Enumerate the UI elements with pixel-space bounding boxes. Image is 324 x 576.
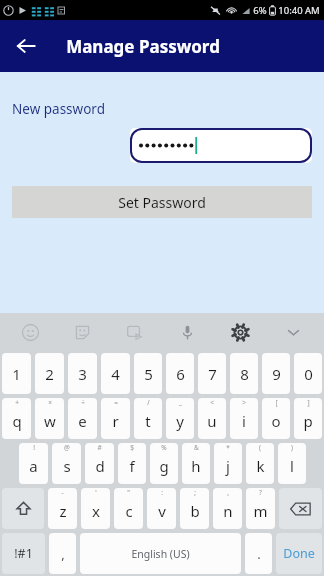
staticText: # [97,443,102,452]
button[interactable]: ; [180,488,209,529]
button[interactable]: ÷ [68,398,97,439]
button[interactable]: × [35,398,64,439]
staticText: ' [95,488,97,497]
button[interactable]: !#1 [2,533,45,574]
button[interactable]: > [230,398,258,439]
staticText: 9 [272,364,281,384]
button[interactable]: " [114,488,143,529]
button[interactable]: / [134,398,162,439]
button[interactable]: @ [52,443,81,484]
staticText: ? [259,488,262,497]
button[interactable]: Voice input [161,313,214,351]
staticText: < [210,398,214,407]
staticText: i [242,411,246,431]
button[interactable]: Set Password [12,186,312,218]
button[interactable]: 2 [35,353,64,394]
staticText: m [253,501,268,521]
button[interactable]: 6 [166,353,194,394]
staticText: 6% [253,4,267,17]
button[interactable]: 5 [134,353,162,394]
staticText: 7 [208,364,217,384]
button[interactable]: : [147,488,176,529]
staticText: " [127,488,130,497]
button[interactable]: 1 [2,353,31,394]
staticText: 2 [45,364,54,384]
button[interactable]: - [48,488,77,529]
staticText: ; [194,488,196,497]
button[interactable]: 8 [230,353,258,394]
staticText: , [61,545,65,563]
staticText: f [129,456,135,476]
staticText: x [92,501,100,521]
button[interactable]: GIF [108,313,161,351]
staticText: v [158,501,166,521]
staticText: . [257,545,261,563]
staticText: × [48,398,52,407]
staticText: New password [12,100,105,118]
button[interactable]: $ [118,443,146,484]
staticText: + [15,398,19,407]
staticText: o [271,411,281,431]
button[interactable]: Hide keyboard [267,313,320,351]
button[interactable]: ! [19,443,48,484]
button[interactable]: Backspace [279,488,322,529]
button[interactable]: , [49,533,76,574]
staticText: y [176,411,184,431]
staticText: Done [283,545,315,562]
button[interactable]: # [85,443,114,484]
button[interactable]: , [213,488,242,529]
staticText: !#1 [14,545,33,562]
staticText: j [226,456,230,476]
staticText: q [12,411,22,431]
button[interactable]: 7 [198,353,226,394]
staticText: English (US) [131,547,190,561]
staticText: ÷ [81,398,85,407]
button[interactable]: < [198,398,226,439]
button[interactable]: 9 [262,353,290,394]
button[interactable]: _ [166,398,194,439]
button[interactable]: New password field [130,128,312,163]
button[interactable]: . [245,533,272,574]
staticText: Set Password [118,193,206,212]
staticText: r [112,411,119,431]
staticText: 6 [176,364,185,384]
button[interactable]: ( [246,443,274,484]
button[interactable]: Back [8,28,44,64]
button[interactable]: ] [294,398,322,439]
button[interactable]: 3 [68,353,97,394]
button[interactable]: Stickers [56,313,108,351]
button[interactable]: Done [276,533,322,574]
staticText: b [190,501,200,521]
staticText: * [226,443,230,452]
staticText: l [290,456,294,476]
staticText: = [114,398,118,407]
staticText: / [147,398,150,407]
button[interactable]: % [150,443,178,484]
staticText: 4 [111,364,120,384]
button[interactable]: Emoji [4,313,56,351]
staticText: % [161,443,167,452]
button[interactable]: * [214,443,242,484]
button[interactable]: 0 [294,353,322,394]
button[interactable]: Settings [214,313,267,351]
button[interactable]: ) [278,443,306,484]
button[interactable]: 4 [101,353,130,394]
button[interactable]: & [182,443,210,484]
staticText: ) [291,443,293,452]
staticText: 0 [304,364,313,384]
staticText: > [242,398,246,407]
button[interactable]: + [2,398,31,439]
button[interactable]: [ [262,398,290,439]
staticText: g [159,456,169,476]
button[interactable]: English (US) [80,533,241,574]
staticText: z [59,501,67,521]
button[interactable]: ? [246,488,275,529]
staticText: 8 [240,364,249,384]
button[interactable]: = [101,398,130,439]
staticText: $ [130,443,134,452]
staticText: t [145,411,151,431]
staticText: e [78,411,87,431]
button[interactable]: Shift [2,488,44,529]
staticText: ( [259,443,261,452]
button[interactable]: ' [81,488,110,529]
